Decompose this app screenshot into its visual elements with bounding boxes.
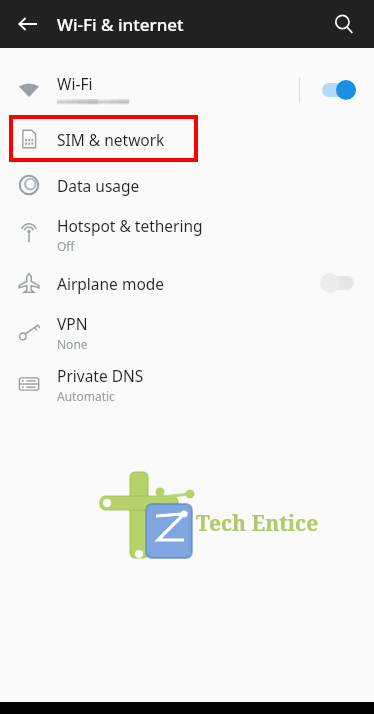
button[interactable] — [320, 272, 356, 294]
button[interactable]: SIM & network — [0, 116, 374, 162]
staticText: None — [57, 336, 88, 352]
staticText: Private DNS — [57, 365, 144, 386]
staticText: SIM & network — [57, 129, 165, 150]
button[interactable]: Hotspot & tethering — [0, 208, 374, 260]
button[interactable]: Back — [8, 4, 48, 44]
button[interactable]: Airplane mode — [0, 260, 374, 306]
button[interactable]: VPN — [0, 306, 374, 358]
staticText: VPN — [57, 313, 88, 334]
staticText: Hotspot & tethering — [57, 215, 203, 236]
staticText: Off — [57, 238, 75, 254]
button[interactable]: Wi-Fi — [0, 64, 374, 116]
staticText: Wi-Fi & internet — [57, 13, 184, 36]
button[interactable] — [320, 79, 356, 101]
button[interactable]: Search — [324, 4, 364, 44]
staticText: Data usage — [57, 175, 140, 196]
button[interactable]: Data usage — [0, 162, 374, 208]
staticText: Airplane mode — [57, 273, 165, 294]
staticText: Tech Entice — [196, 509, 319, 538]
staticText: Automatic — [57, 388, 115, 404]
button[interactable]: Private DNS — [0, 358, 374, 410]
staticText: Wi-Fi — [57, 73, 93, 94]
